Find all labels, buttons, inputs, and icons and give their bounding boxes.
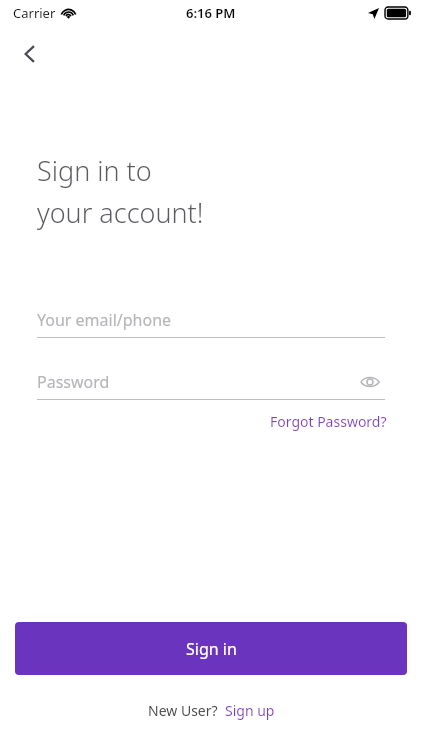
staticText: Forgot Password? <box>270 412 387 431</box>
button[interactable]: Forgot Password? <box>268 408 389 435</box>
staticText: New User? <box>148 701 218 720</box>
staticText: Your email/phone <box>37 309 172 331</box>
staticText: Carrier <box>13 4 56 22</box>
staticText: your account! <box>37 194 204 231</box>
button[interactable]: Your email/phone <box>37 303 385 337</box>
staticText: 6:16 PM <box>186 4 236 22</box>
button[interactable]: Sign in <box>15 622 407 675</box>
button[interactable]: Back <box>8 32 52 76</box>
button[interactable]: Password <box>37 365 385 399</box>
staticText: Sign up <box>225 701 275 720</box>
button[interactable]: Show password <box>355 367 385 397</box>
staticText: Sign in to <box>37 152 152 189</box>
staticText: Sign in <box>186 638 237 660</box>
button[interactable]: Sign up <box>225 701 275 720</box>
staticText: Password <box>37 371 110 393</box>
